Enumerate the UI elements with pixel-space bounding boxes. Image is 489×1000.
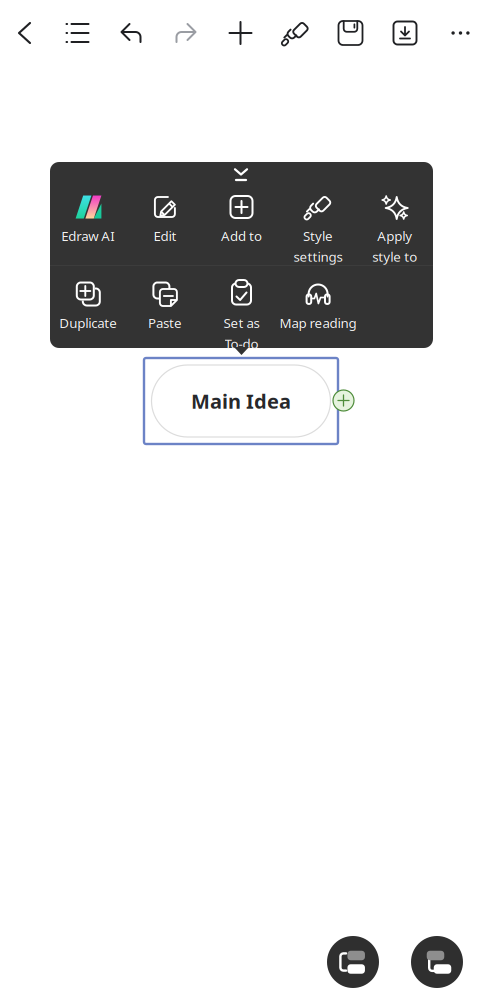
button[interactable]: Edraw AI (50, 193, 127, 265)
staticText: To-do (224, 335, 258, 352)
button[interactable]: Paste (127, 280, 203, 350)
staticText: Main Idea (191, 388, 291, 414)
button[interactable]: Set as (203, 280, 280, 350)
button[interactable]: Export (378, 0, 432, 66)
button[interactable]: More (432, 0, 489, 66)
staticText: Edraw AI (61, 227, 115, 245)
button[interactable]: Map reading (280, 280, 356, 350)
staticText: Paste (148, 314, 182, 332)
staticText: Set as (223, 314, 259, 332)
staticText: Edit (153, 227, 176, 245)
button[interactable]: Add to (203, 193, 280, 265)
button[interactable]: Edit (127, 193, 203, 265)
button[interactable]: Outline (50, 0, 105, 66)
button[interactable]: Save (323, 0, 378, 66)
button[interactable]: Style (280, 193, 356, 265)
staticText: settings (294, 248, 343, 265)
button[interactable]: Add subtopic (411, 936, 463, 988)
button[interactable]: Back (0, 0, 50, 66)
button[interactable]: Apply (356, 193, 433, 265)
button[interactable]: Add (213, 0, 268, 66)
button[interactable]: Add topic (327, 936, 379, 988)
button[interactable]: Style (268, 0, 323, 66)
button[interactable]: Collapse menu (211, 163, 271, 187)
staticText: Duplicate (59, 314, 117, 332)
staticText: Map reading (280, 314, 357, 332)
button[interactable]: Undo (105, 0, 158, 66)
staticText: style to (372, 248, 417, 265)
button[interactable]: Redo (158, 0, 213, 66)
staticText: Add to (221, 227, 262, 245)
button[interactable]: Duplicate (50, 280, 127, 350)
staticText: Style (303, 227, 333, 245)
staticText: Apply (377, 227, 412, 245)
